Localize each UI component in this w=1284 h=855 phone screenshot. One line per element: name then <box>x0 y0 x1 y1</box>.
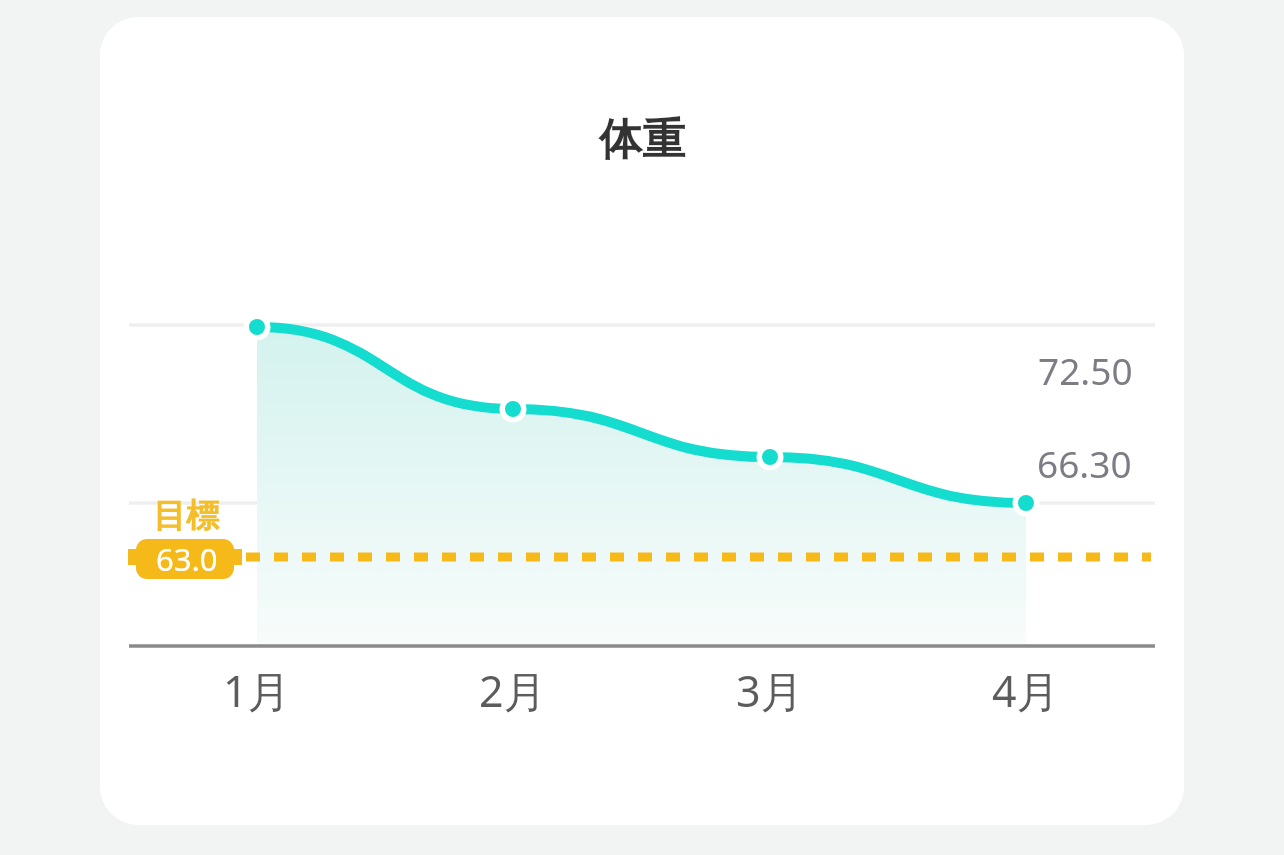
button[interactable] <box>0 0 1284 855</box>
other: 体重の推移グラフ <box>0 0 1284 855</box>
